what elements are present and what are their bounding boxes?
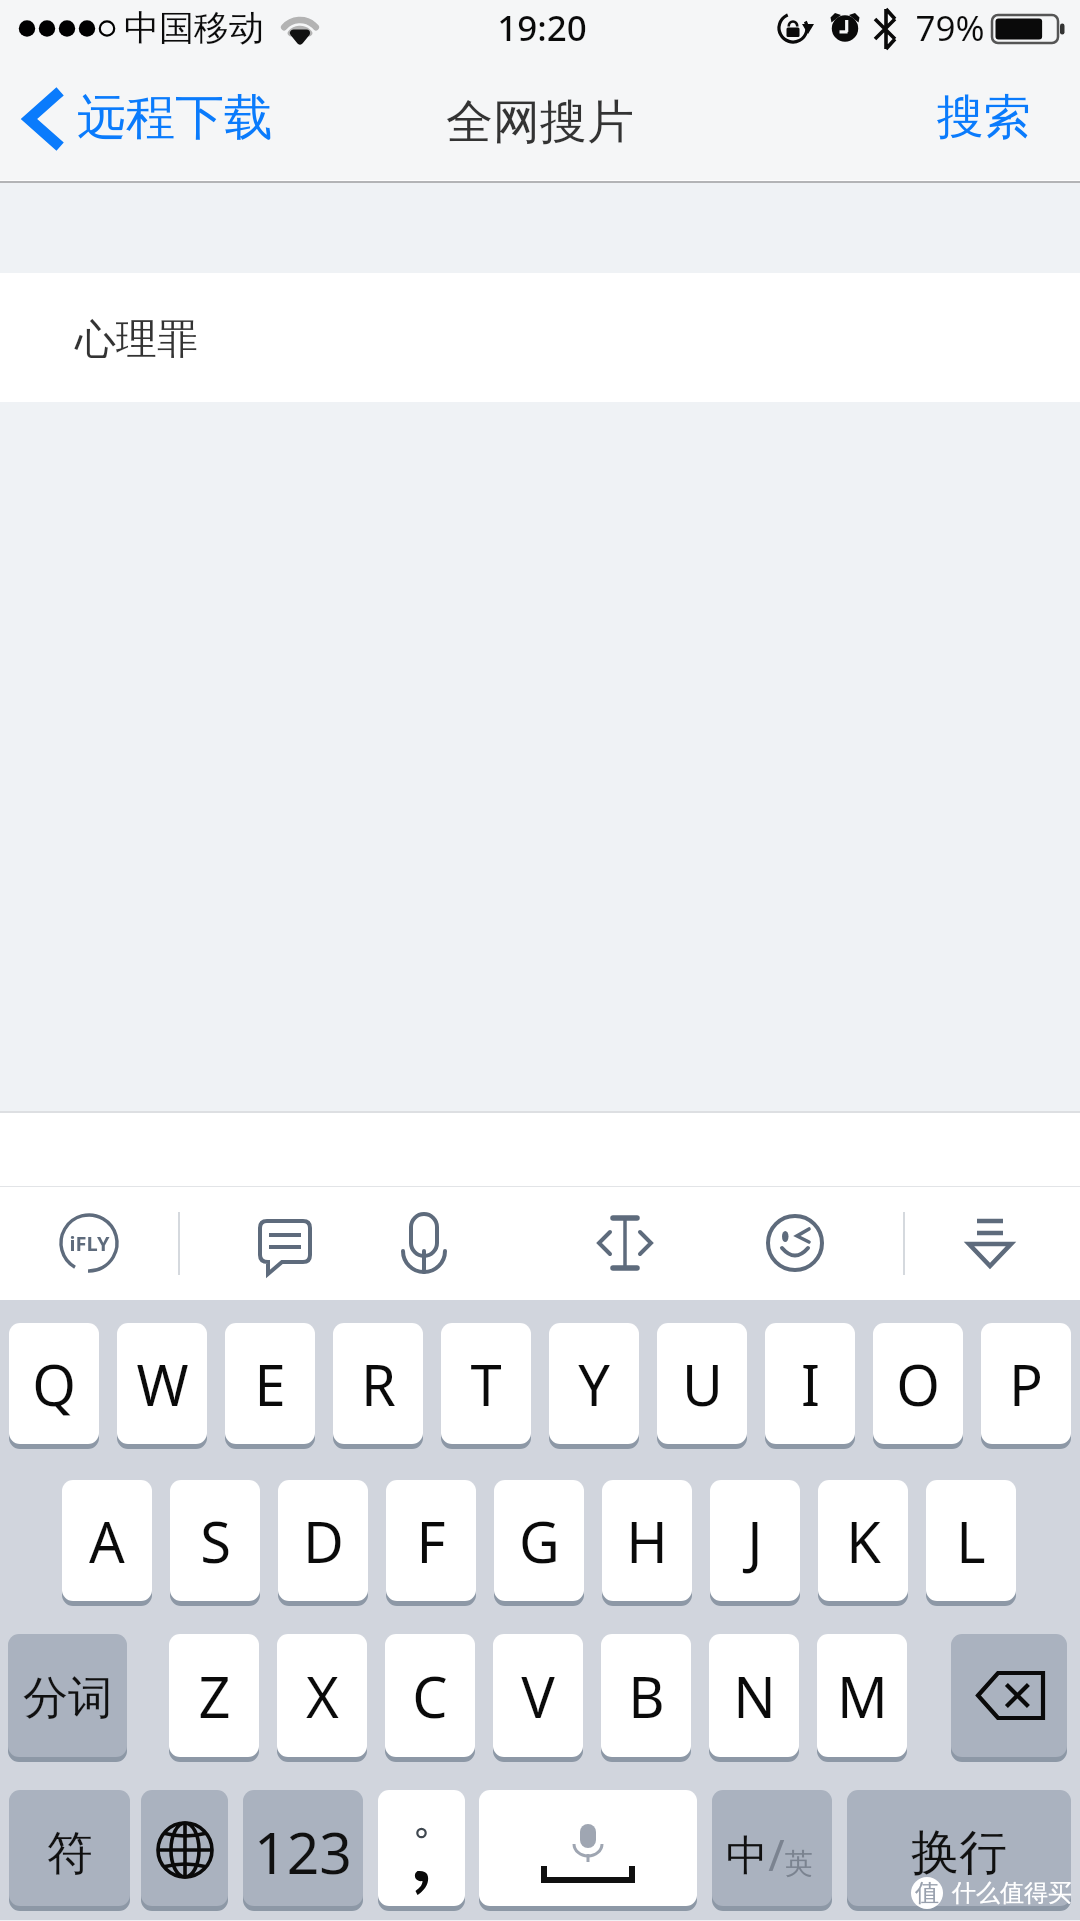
staticText: 中国移动 xyxy=(124,6,264,50)
button[interactable]: Y xyxy=(549,1323,639,1444)
staticText: 19:20 xyxy=(497,4,587,52)
button[interactable]: 符 xyxy=(9,1790,130,1906)
button[interactable]: iFLY xyxy=(57,1211,121,1275)
button[interactable]: N xyxy=(709,1634,799,1757)
button[interactable]: E xyxy=(225,1323,315,1444)
button[interactable]: M xyxy=(817,1634,907,1757)
button[interactable]: Space xyxy=(479,1790,697,1906)
button[interactable]: G xyxy=(494,1480,584,1601)
staticText: T xyxy=(470,1346,502,1422)
staticText: G xyxy=(519,1503,560,1579)
staticText: P xyxy=(1009,1346,1043,1422)
button[interactable]: X xyxy=(277,1634,367,1757)
button[interactable]: Backspace xyxy=(951,1634,1067,1757)
button[interactable]: O xyxy=(873,1323,963,1444)
staticText: Y xyxy=(578,1346,610,1422)
button[interactable]: S xyxy=(170,1480,260,1601)
button[interactable]: 远程下载 xyxy=(0,74,289,166)
button[interactable]: W xyxy=(117,1323,207,1444)
staticText: 搜索 xyxy=(937,88,1031,147)
staticText: Z xyxy=(198,1658,231,1734)
staticText: / xyxy=(768,1824,785,1884)
button[interactable]: J xyxy=(710,1480,800,1601)
button[interactable]: Q xyxy=(9,1323,99,1444)
staticText: B xyxy=(628,1658,665,1734)
button[interactable]: Message xyxy=(249,1207,321,1279)
button[interactable]: 换行 xyxy=(847,1790,1071,1906)
button[interactable]: I xyxy=(765,1323,855,1444)
staticText: S xyxy=(200,1503,231,1579)
button[interactable]: T xyxy=(441,1323,531,1444)
staticText: K xyxy=(846,1503,881,1579)
staticText: I xyxy=(801,1346,820,1422)
staticText: C xyxy=(412,1658,448,1734)
staticText: 什么值得买 xyxy=(952,1878,1072,1908)
button[interactable]: 分词 xyxy=(8,1634,127,1757)
button[interactable]: C xyxy=(385,1634,475,1757)
staticText: 分词 xyxy=(23,1670,113,1727)
button[interactable]: Chinese English toggle xyxy=(712,1790,832,1906)
staticText: 123 xyxy=(254,1813,352,1891)
button[interactable]: A xyxy=(62,1480,152,1601)
staticText: 值 xyxy=(915,1878,939,1908)
staticText: 英 xyxy=(785,1846,813,1881)
staticText: U xyxy=(682,1346,723,1422)
button[interactable]: 123 xyxy=(243,1790,363,1906)
button[interactable]: D xyxy=(278,1480,368,1601)
button[interactable]: P xyxy=(981,1323,1071,1444)
staticText: O xyxy=(896,1346,940,1422)
staticText: 符 xyxy=(47,1825,93,1883)
button[interactable]: R xyxy=(333,1323,423,1444)
staticText: 远程下载 xyxy=(77,87,273,149)
staticText: V xyxy=(521,1658,555,1734)
button[interactable]: V xyxy=(493,1634,583,1757)
button[interactable]: 心理罪 xyxy=(0,273,1080,402)
staticText: H xyxy=(626,1503,668,1579)
button[interactable]: Cursor move xyxy=(589,1207,661,1279)
staticText: D xyxy=(303,1503,344,1579)
button[interactable]: Emoji xyxy=(759,1207,831,1279)
staticText: iFLY xyxy=(69,1230,110,1257)
button[interactable]: L xyxy=(926,1480,1016,1601)
staticText: N xyxy=(733,1658,776,1734)
staticText: 心理罪 xyxy=(75,314,198,366)
staticText: 全网搜片 xyxy=(446,93,634,152)
staticText: R xyxy=(361,1346,396,1422)
staticText: Q xyxy=(32,1346,76,1422)
button[interactable]: 搜索 xyxy=(911,80,1080,159)
staticText: E xyxy=(254,1346,286,1422)
button[interactable]: H xyxy=(602,1480,692,1601)
button[interactable]: U xyxy=(657,1323,747,1444)
staticText: L xyxy=(956,1503,986,1579)
staticText: 中 xyxy=(726,1830,768,1883)
button[interactable]: B xyxy=(601,1634,691,1757)
staticText: W xyxy=(136,1346,189,1422)
button[interactable]: Comma xyxy=(378,1790,465,1906)
staticText: F xyxy=(416,1503,446,1579)
button[interactable]: Voice input xyxy=(388,1207,460,1279)
button[interactable]: F xyxy=(386,1480,476,1601)
staticText: 79% xyxy=(915,4,985,52)
staticText: X xyxy=(306,1658,339,1734)
button[interactable]: Switch language xyxy=(141,1790,228,1906)
button[interactable]: Z xyxy=(169,1634,259,1757)
staticText: A xyxy=(89,1503,125,1579)
staticText: J xyxy=(747,1503,763,1579)
button[interactable]: Hide keyboard xyxy=(954,1207,1026,1279)
button[interactable]: K xyxy=(818,1480,908,1601)
staticText: M xyxy=(837,1658,888,1734)
staticText: 换行 xyxy=(911,1823,1007,1883)
